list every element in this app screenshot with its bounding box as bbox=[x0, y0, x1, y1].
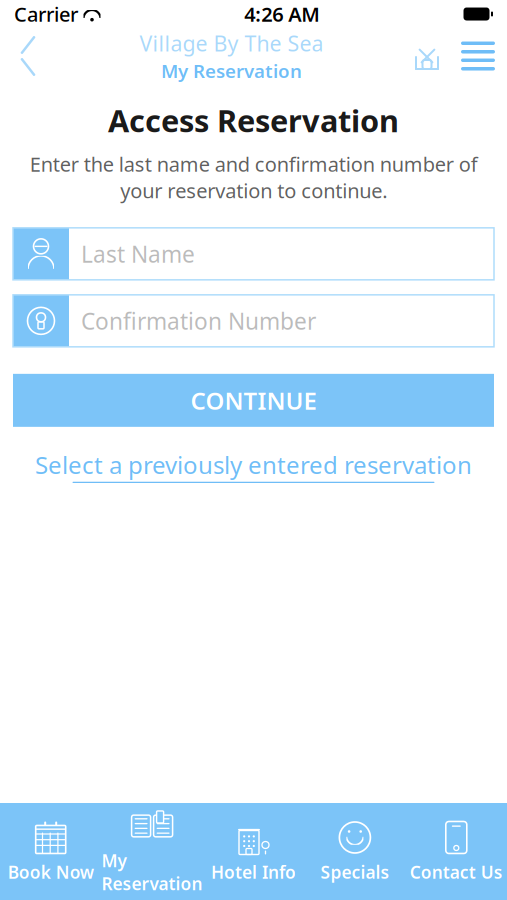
button[interactable]: CONTINUE bbox=[13, 374, 494, 427]
button[interactable]: Book Now bbox=[0, 803, 101, 900]
staticText: My Reservation bbox=[161, 58, 302, 83]
button[interactable]: Confirmation Number bbox=[13, 295, 494, 347]
button[interactable]: Home bbox=[407, 31, 447, 81]
staticText: CONTINUE bbox=[190, 384, 316, 416]
staticText: Access Reservation bbox=[108, 100, 399, 141]
button[interactable]: My Reservation bbox=[101, 803, 203, 900]
staticText: 4:26 AM bbox=[244, 1, 320, 27]
staticText: Enter the last name and confirmation num… bbox=[29, 151, 477, 204]
staticText: Contact Us bbox=[410, 860, 503, 883]
staticText: Carrier bbox=[14, 1, 78, 27]
button[interactable]: Specials bbox=[304, 803, 406, 900]
staticText: Book Now bbox=[8, 860, 94, 883]
button[interactable]: Select a previously entered reservation bbox=[35, 443, 472, 489]
staticText: Specials bbox=[320, 860, 389, 883]
button[interactable]: Contact Us bbox=[406, 803, 507, 900]
button[interactable]: Menu bbox=[457, 31, 499, 81]
staticText: Hotel Info bbox=[211, 860, 296, 883]
button[interactable]: Back bbox=[0, 31, 56, 81]
staticText: Confirmation Number bbox=[81, 306, 316, 336]
button[interactable]: Hotel Info bbox=[203, 803, 304, 900]
staticText: Last Name bbox=[81, 239, 195, 269]
staticText: Village By The Sea bbox=[139, 29, 323, 57]
staticText: Select a previously entered reservation bbox=[35, 449, 472, 481]
staticText: My Reservation bbox=[102, 849, 203, 895]
button[interactable]: Last Name bbox=[13, 228, 494, 280]
